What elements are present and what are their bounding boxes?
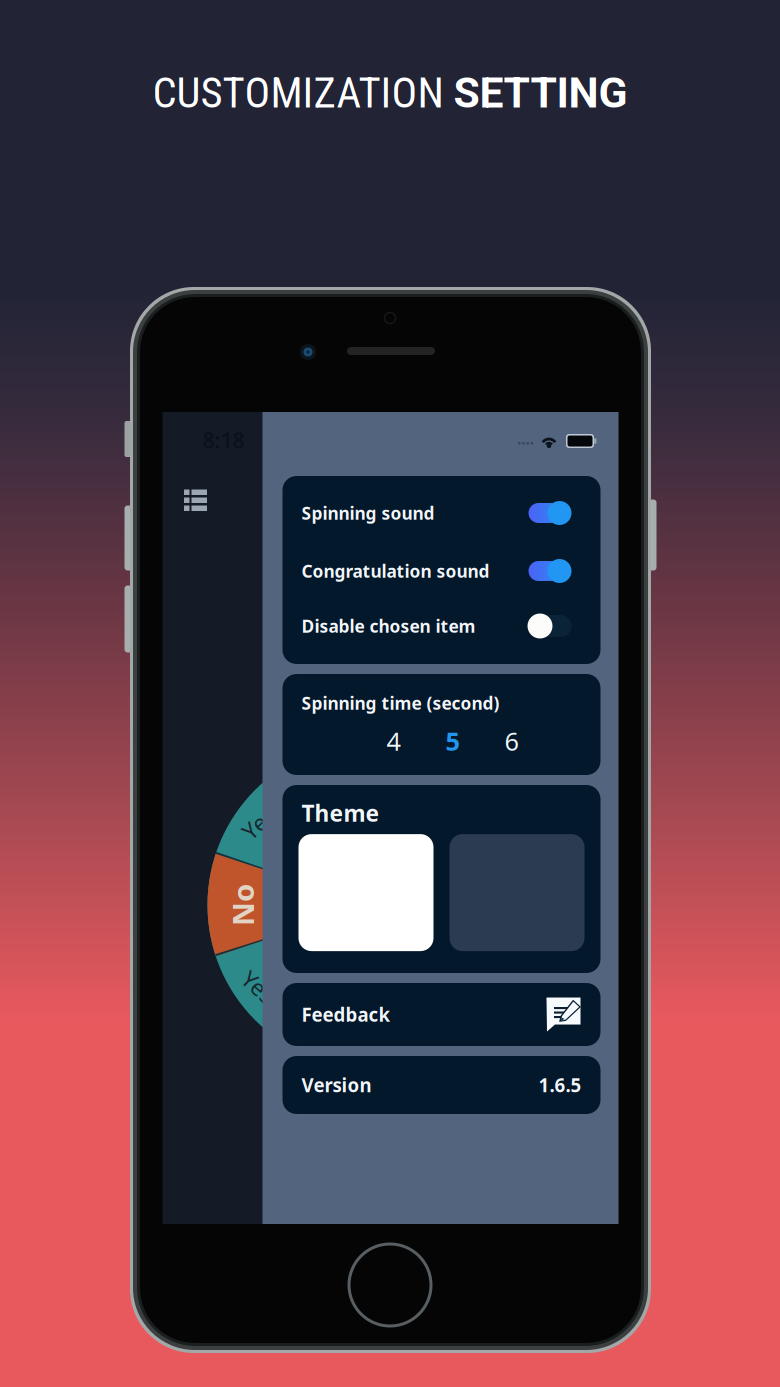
staticText: 5	[445, 724, 459, 758]
staticText: CUSTOMIZATION	[152, 68, 453, 118]
button[interactable]: 5	[429, 723, 475, 759]
button[interactable]: Dark theme	[449, 834, 584, 951]
button[interactable]: 4	[370, 723, 416, 759]
staticText: Feedback	[301, 1002, 390, 1027]
staticText: 6	[504, 724, 518, 758]
button[interactable]: 6	[488, 723, 534, 759]
button[interactable]: Feedback	[282, 983, 600, 1046]
button[interactable]: Light theme	[298, 834, 433, 951]
staticText: SETTING	[453, 68, 627, 118]
staticText: Spinning sound	[301, 501, 434, 524]
staticText: 4	[386, 724, 400, 758]
button[interactable]: Disable chosen item	[282, 604, 600, 648]
staticText: 8:18	[202, 426, 244, 454]
button[interactable]: Congratulation sound	[282, 549, 600, 593]
staticText: Yes	[240, 972, 276, 1002]
staticText: Congratulation sound	[301, 559, 489, 582]
button[interactable]: Spinning sound	[282, 491, 600, 535]
staticText: Theme	[301, 798, 379, 828]
staticText: Spinning time (second)	[301, 691, 499, 714]
staticText: Disable chosen item	[301, 614, 475, 637]
staticText: Yes	[240, 808, 276, 838]
staticText: No	[221, 885, 263, 924]
staticText: 1.6.5	[538, 1073, 581, 1097]
button[interactable]: Menu	[173, 478, 218, 521]
staticText: Version	[301, 1073, 371, 1097]
